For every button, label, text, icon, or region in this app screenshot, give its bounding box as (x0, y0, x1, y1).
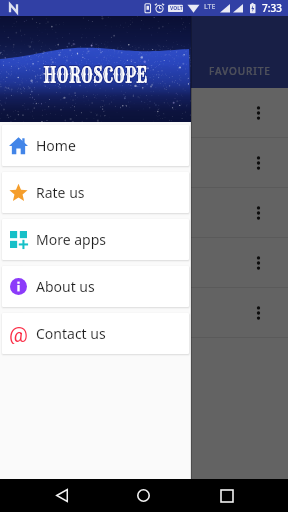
button[interactable]: Home (2, 125, 189, 166)
button[interactable]: About us (2, 266, 189, 307)
button[interactable]: More options (0, 88, 288, 138)
staticText: About us (36, 277, 95, 296)
staticText: FAVOURITE (209, 64, 271, 78)
staticText: HOROSCOPE (43, 60, 147, 88)
button[interactable]: Recents (212, 481, 241, 510)
staticText: Rate us (36, 183, 85, 202)
button[interactable]: Home (129, 481, 158, 510)
button[interactable]: FAVOURITE (192, 54, 288, 88)
staticText: LTE (204, 2, 216, 12)
staticText: Contact us (36, 324, 106, 343)
staticText: HOROSCOPE (43, 61, 148, 89)
staticText: HOROSCOPE (43, 61, 147, 89)
button[interactable]: More options (247, 302, 269, 324)
staticText: Home (36, 136, 76, 155)
button[interactable]: More options (0, 288, 288, 338)
staticText: HOROSCOPE (44, 60, 148, 88)
staticText: @ (9, 323, 28, 344)
staticText: HOROSCOPE (44, 61, 148, 89)
staticText: VOLTE (170, 5, 186, 12)
button[interactable]: More options (247, 102, 269, 124)
staticText: HOROSCOPE (44, 62, 148, 90)
button[interactable]: More options (247, 202, 269, 224)
button[interactable]: More apps (2, 219, 189, 260)
button[interactable]: More options (0, 238, 288, 288)
staticText: HOROSCOPE (43, 62, 147, 90)
button[interactable]: More options (0, 188, 288, 238)
staticText: 7:33 (262, 1, 282, 15)
staticText: HOROSCOPE (43, 62, 148, 90)
button[interactable]: WEEKLY (96, 54, 192, 88)
staticText: WEEKLY (122, 64, 166, 78)
button[interactable]: More options (247, 152, 269, 174)
staticText: More apps (36, 230, 106, 249)
button[interactable]: Back (47, 481, 76, 510)
button[interactable]: More options (247, 252, 269, 274)
button[interactable]: Rate us (2, 172, 189, 213)
button[interactable]: TODAY (0, 54, 96, 88)
staticText: HOROSCOPE (43, 60, 148, 88)
button[interactable]: @ (2, 313, 189, 354)
staticText: TODAY (30, 64, 67, 78)
button[interactable]: More options (0, 138, 288, 188)
